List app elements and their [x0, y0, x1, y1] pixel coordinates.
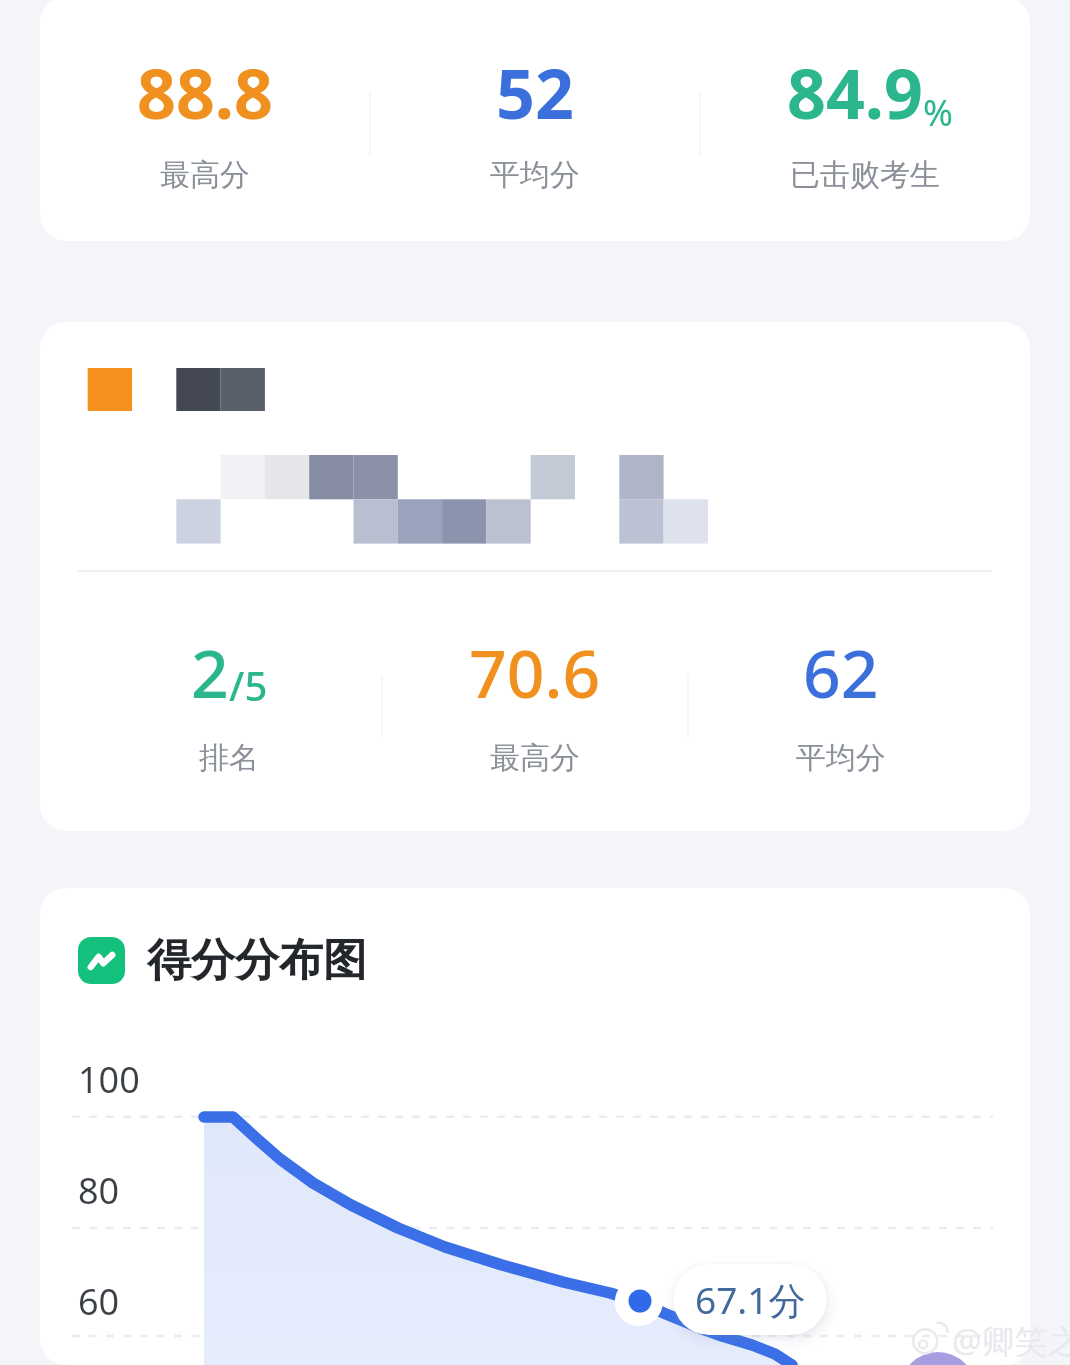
staticText: 最高分 — [160, 156, 250, 194]
button[interactable]: 得分分布图 — [40, 888, 1030, 1365]
staticText: 52 — [496, 46, 574, 139]
staticText: 最高分 — [490, 739, 580, 777]
button[interactable]: 67.1分 — [673, 1264, 827, 1335]
staticText: 60 — [78, 1277, 120, 1326]
staticText: 84.9 — [787, 46, 923, 139]
staticText: 80 — [78, 1166, 120, 1215]
staticText: % — [923, 88, 953, 137]
staticText: 得分分布图 — [147, 933, 367, 988]
staticText: 62 — [803, 627, 879, 717]
button[interactable]: 88.8 — [40, 0, 1030, 241]
staticText: @卿笑之 — [952, 1318, 1070, 1363]
staticText: 排名 — [199, 739, 259, 777]
staticText: 2 — [191, 627, 229, 717]
staticText: 已击败考生 — [790, 156, 940, 194]
staticText: 88.8 — [137, 46, 273, 139]
staticText: 平均分 — [796, 739, 886, 777]
staticText: 70.6 — [469, 627, 601, 717]
staticText: 平均分 — [490, 156, 580, 194]
staticText: 100 — [78, 1055, 140, 1104]
button[interactable]: 2 — [40, 322, 1030, 831]
staticText: 67.1分 — [695, 1274, 806, 1325]
staticText: /5 — [229, 658, 268, 712]
